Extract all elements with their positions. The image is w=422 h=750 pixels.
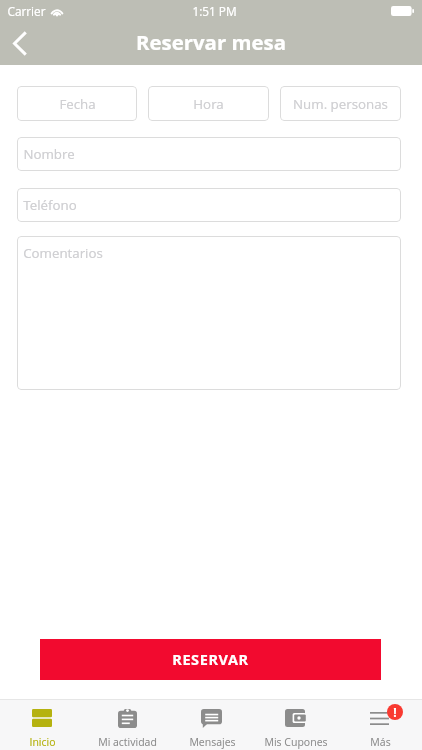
button[interactable]: Hora (148, 86, 269, 121)
staticText: Comentarios (23, 244, 103, 262)
staticText: Más (370, 735, 391, 749)
button[interactable]: Comentarios (17, 236, 401, 390)
button[interactable]: Nombre (17, 137, 401, 171)
button[interactable]: Back (0, 22, 40, 65)
button[interactable]: Fecha (17, 86, 137, 121)
button[interactable]: Teléfono (17, 188, 401, 222)
staticText: Num. personas (293, 95, 388, 113)
staticText: Mis Cupones (264, 735, 328, 749)
staticText: RESERVAR (172, 650, 249, 670)
staticText: ! (393, 704, 397, 720)
staticText: Inicio (29, 735, 56, 749)
staticText: Mi actividad (98, 735, 157, 749)
button[interactable]: Inicio (0, 699, 85, 750)
button[interactable]: Num. personas (280, 86, 401, 121)
staticText: Carrier (7, 3, 46, 19)
staticText: Fecha (59, 95, 96, 113)
staticText: 1:51 PM (192, 3, 237, 19)
staticText: Nombre (23, 145, 75, 163)
staticText: Hora (193, 95, 224, 113)
button[interactable]: Mensajes (170, 699, 254, 750)
button[interactable]: Mi actividad (85, 699, 170, 750)
staticText: Mensajes (189, 735, 236, 749)
button[interactable]: RESERVAR (40, 639, 381, 680)
staticText: Teléfono (23, 196, 77, 214)
button[interactable]: ! (338, 699, 422, 750)
staticText: Reservar mesa (136, 28, 286, 56)
button[interactable]: Mis Cupones (254, 699, 338, 750)
